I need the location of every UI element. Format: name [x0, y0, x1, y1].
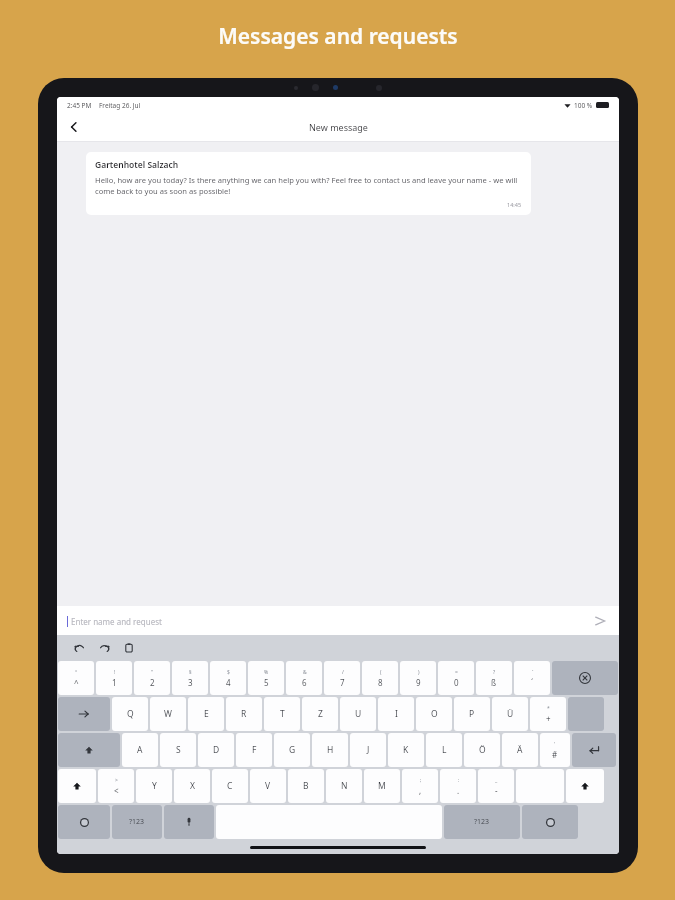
button[interactable]: / — [324, 661, 360, 695]
staticText: 0 — [454, 677, 459, 688]
button[interactable]: : — [440, 769, 476, 803]
staticText: = — [455, 669, 458, 676]
button[interactable]: O — [416, 697, 452, 731]
staticText: , — [419, 785, 422, 796]
staticText: ) — [418, 669, 420, 676]
staticText: 7 — [340, 677, 345, 688]
staticText: Gartenhotel Salzach — [95, 159, 179, 171]
button[interactable]: ' — [540, 733, 570, 767]
staticText: G — [289, 744, 296, 756]
button[interactable] — [522, 805, 578, 839]
staticText: Ö — [479, 744, 486, 756]
button[interactable]: " — [134, 661, 170, 695]
button[interactable]: Redo — [94, 638, 114, 658]
button[interactable]: Back — [61, 114, 87, 140]
button[interactable]: Ö — [464, 733, 500, 767]
button[interactable]: M — [364, 769, 400, 803]
button[interactable]: % — [248, 661, 284, 695]
staticText: I — [395, 708, 398, 720]
button[interactable]: B — [288, 769, 324, 803]
button[interactable]: § — [172, 661, 208, 695]
button[interactable]: A — [122, 733, 158, 767]
button[interactable]: ? — [476, 661, 512, 695]
button[interactable]: ( — [362, 661, 398, 695]
staticText: K — [403, 744, 409, 756]
button[interactable]: ?123 — [112, 805, 162, 839]
button[interactable]: J — [350, 733, 386, 767]
button[interactable]: _ — [478, 769, 514, 803]
button[interactable] — [58, 697, 110, 731]
button[interactable] — [572, 733, 616, 767]
button[interactable]: H — [312, 733, 348, 767]
button[interactable]: ! — [96, 661, 132, 695]
button[interactable] — [566, 769, 604, 803]
button[interactable] — [58, 769, 96, 803]
staticText: New message — [309, 121, 368, 133]
button[interactable]: F — [236, 733, 272, 767]
staticText: < — [114, 785, 119, 796]
button[interactable]: Gartenhotel Salzach — [86, 152, 531, 215]
button[interactable]: G — [274, 733, 310, 767]
staticText: Hello, how are you today? Is there anyth… — [95, 175, 522, 196]
button[interactable]: X — [174, 769, 210, 803]
staticText: Ü — [507, 708, 514, 720]
staticText: Z — [318, 708, 323, 720]
staticText: E — [204, 708, 209, 720]
staticText: : — [458, 777, 460, 784]
button[interactable]: Z — [302, 697, 338, 731]
button[interactable]: & — [286, 661, 322, 695]
button[interactable]: D — [198, 733, 234, 767]
staticText: ´ — [531, 677, 534, 688]
button[interactable]: S — [160, 733, 196, 767]
staticText: ' — [554, 741, 556, 748]
button[interactable]: Send — [591, 612, 609, 630]
staticText: & — [303, 669, 307, 676]
button[interactable]: $ — [210, 661, 246, 695]
button[interactable]: U — [340, 697, 376, 731]
button[interactable]: * — [530, 697, 566, 731]
button[interactable] — [552, 661, 618, 695]
button[interactable]: Ü — [492, 697, 528, 731]
button[interactable]: C — [212, 769, 248, 803]
button[interactable]: I — [378, 697, 414, 731]
button[interactable] — [58, 733, 120, 767]
staticText: 4 — [226, 677, 231, 688]
button[interactable]: N — [326, 769, 362, 803]
staticText: D — [213, 744, 220, 756]
staticText: Enter name and request — [71, 616, 162, 627]
staticText: # — [552, 749, 558, 760]
staticText: * — [547, 705, 550, 712]
button[interactable]: ) — [400, 661, 436, 695]
staticText: S — [176, 744, 181, 756]
button[interactable]: V — [250, 769, 286, 803]
staticText: - — [495, 785, 498, 796]
button[interactable]: ° — [58, 661, 94, 695]
button[interactable]: Clipboard — [119, 638, 139, 658]
button[interactable]: K — [388, 733, 424, 767]
button[interactable]: ; — [402, 769, 438, 803]
staticText: ß — [491, 677, 497, 688]
staticText: W — [164, 708, 172, 720]
button[interactable]: R — [226, 697, 262, 731]
staticText: 5 — [264, 677, 269, 688]
button[interactable]: = — [438, 661, 474, 695]
button[interactable] — [164, 805, 214, 839]
button[interactable]: P — [454, 697, 490, 731]
button[interactable]: Enter name and request — [57, 606, 619, 635]
button[interactable]: ?123 — [444, 805, 520, 839]
button[interactable]: > — [98, 769, 134, 803]
button[interactable]: Undo — [69, 638, 89, 658]
button[interactable]: ` — [514, 661, 550, 695]
button[interactable]: Ä — [502, 733, 538, 767]
button[interactable] — [58, 805, 110, 839]
button[interactable]: E — [188, 697, 224, 731]
button[interactable]: T — [264, 697, 300, 731]
staticText: 8 — [378, 677, 383, 688]
button[interactable]: Y — [136, 769, 172, 803]
button[interactable]: Q — [112, 697, 148, 731]
button[interactable]: L — [426, 733, 462, 767]
button[interactable]: W — [150, 697, 186, 731]
